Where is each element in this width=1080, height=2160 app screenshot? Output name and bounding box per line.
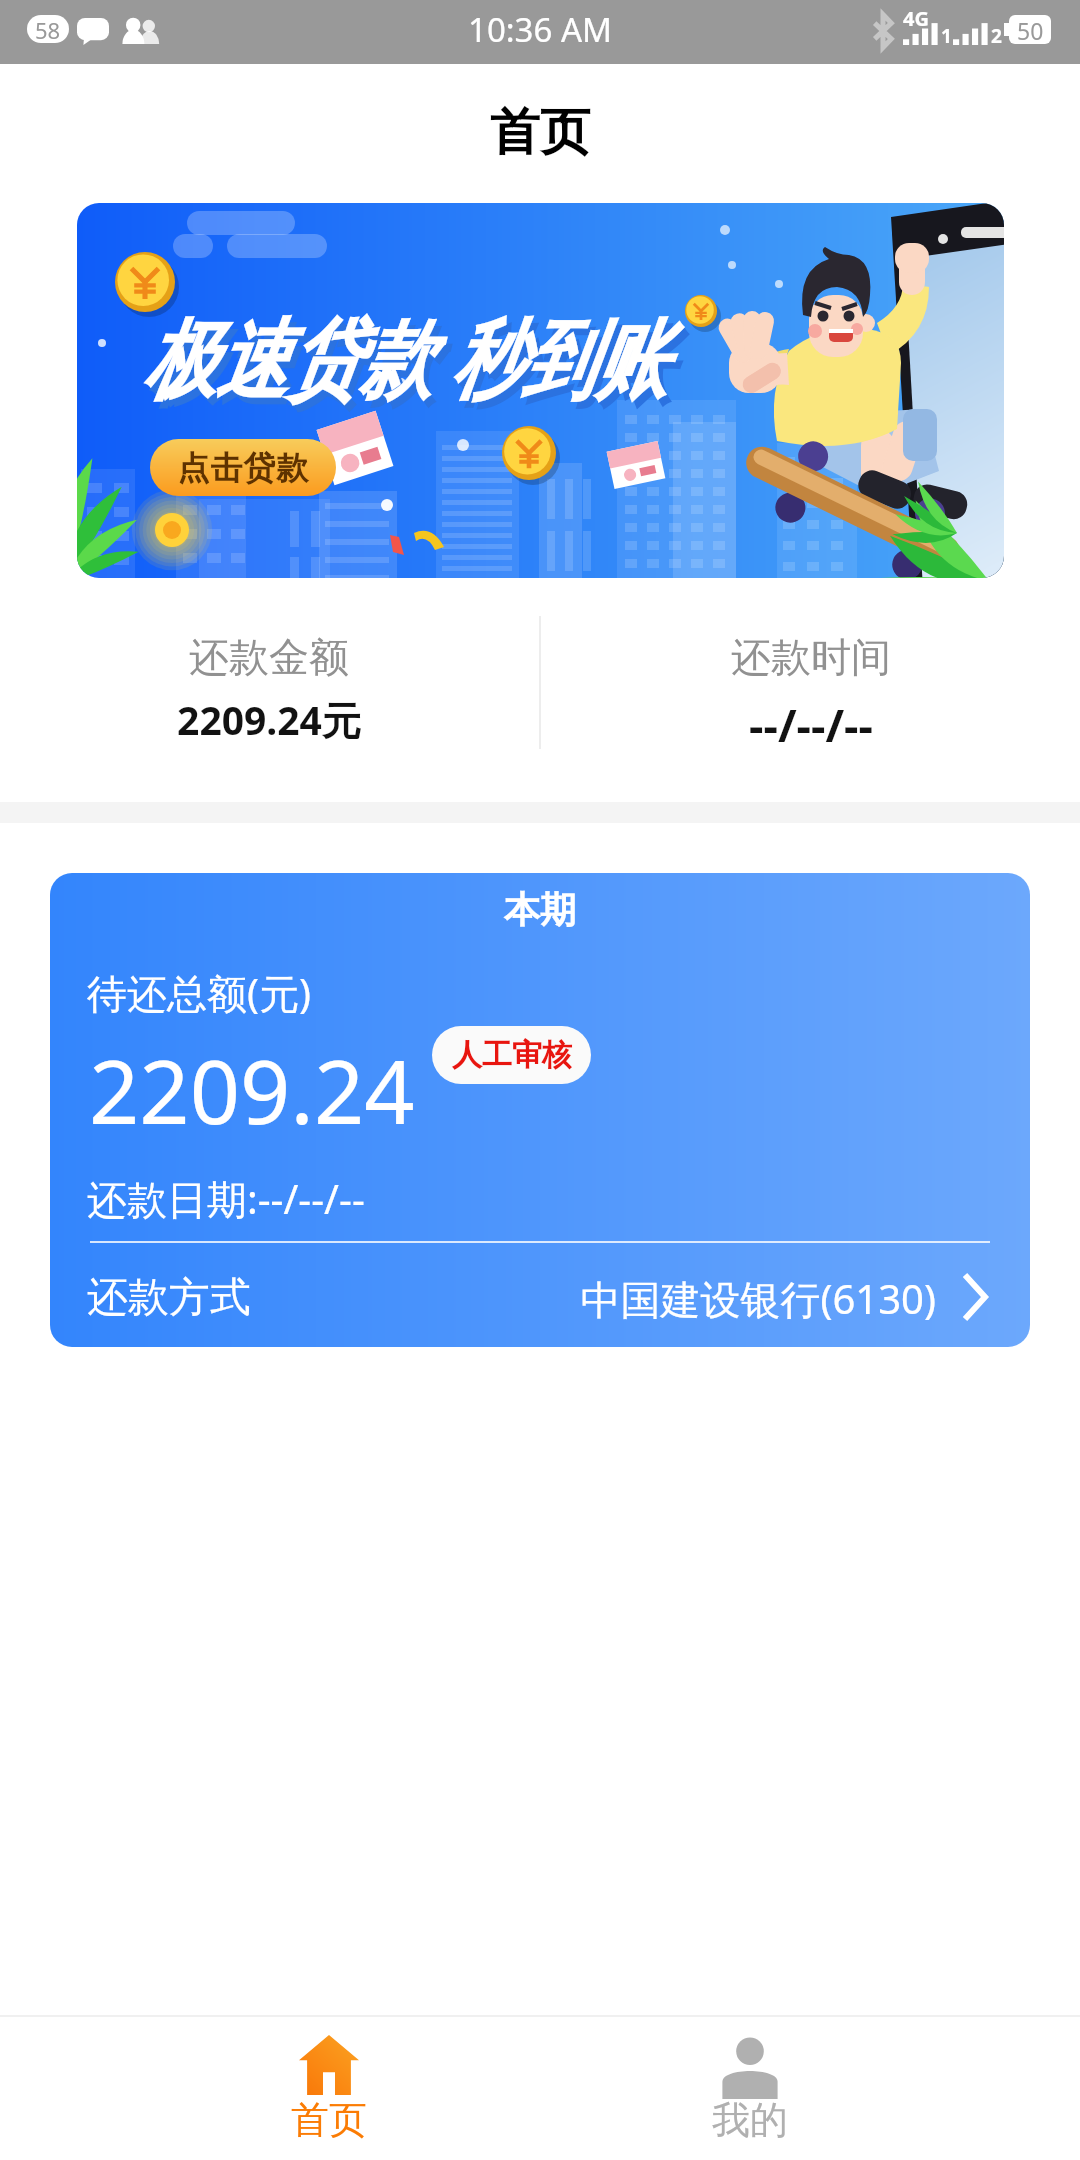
button[interactable]: 点击贷款 bbox=[150, 439, 336, 496]
staticText: 58 bbox=[35, 15, 61, 43]
staticText: 极速贷款 秒到账 bbox=[148, 304, 672, 423]
button[interactable]: 还款方式 bbox=[90, 1251, 990, 1339]
staticText: 极速贷款 秒到账 bbox=[143, 297, 667, 416]
button[interactable]: 我的 bbox=[630, 2017, 870, 2160]
staticText: 还款时间 bbox=[542, 632, 1080, 682]
staticText: 还款日期:--/--/-- bbox=[87, 1171, 365, 1226]
staticText: 4G bbox=[903, 5, 929, 32]
staticText: 1 bbox=[941, 23, 952, 49]
staticText: --/--/-- bbox=[542, 694, 1080, 755]
staticText: 2 bbox=[991, 23, 1002, 49]
staticText: 本期 bbox=[50, 887, 1030, 932]
staticText: 首页 bbox=[209, 2096, 449, 2144]
staticText: 2209.24元 bbox=[0, 693, 538, 746]
button[interactable]: 首页 bbox=[209, 2017, 449, 2160]
staticText: 我的 bbox=[630, 2096, 870, 2144]
button[interactable]: 人工审核 bbox=[432, 1026, 591, 1084]
button[interactable]: 本期 bbox=[50, 873, 1030, 1347]
staticText: 2209.24 bbox=[89, 1030, 415, 1150]
staticText: 点击贷款 bbox=[177, 448, 309, 488]
staticText: 中国建设银行(6130) bbox=[90, 1271, 936, 1326]
staticText: 50 bbox=[1017, 15, 1044, 44]
staticText: 还款金额 bbox=[0, 632, 538, 682]
staticText: 首页 bbox=[0, 101, 1080, 164]
staticText: 10:36 AM bbox=[0, 7, 1080, 52]
staticText: 还款方式 bbox=[87, 1272, 251, 1324]
button[interactable]: 极速贷款 秒到账 banner bbox=[77, 203, 1004, 578]
staticText: 人工审核 bbox=[452, 1036, 572, 1074]
staticText: 待还总额(元) bbox=[87, 965, 311, 1020]
